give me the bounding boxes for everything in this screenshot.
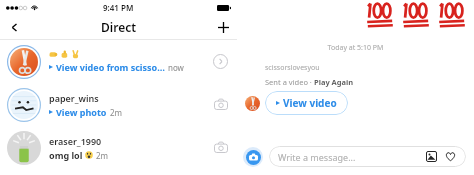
staticText: now	[168, 62, 184, 73]
button[interactable]: Send like	[444, 150, 457, 163]
staticText: Direct	[101, 19, 137, 35]
staticText: Play Again	[314, 77, 354, 87]
button[interactable]: Open conversation	[211, 52, 230, 71]
button[interactable]: Camera	[211, 95, 230, 114]
button[interactable]: View video	[265, 91, 348, 115]
staticText: eraser_1990	[49, 135, 102, 147]
button[interactable]: View video from scisso…	[0, 40, 237, 83]
staticText: paper_wins	[49, 92, 99, 104]
staticText: View photo	[56, 106, 107, 118]
staticText: 2m	[110, 107, 123, 118]
button[interactable]: Camera	[211, 138, 230, 157]
button[interactable]: New message	[213, 17, 233, 37]
staticText: Write a message...	[278, 151, 425, 163]
button[interactable]: eraser_1990	[0, 126, 237, 169]
staticText: omg lol	[49, 149, 83, 161]
staticText: Sent a video ·	[265, 77, 314, 87]
button[interactable]: Open camera	[243, 147, 263, 167]
staticText: View video from scisso…	[56, 61, 165, 73]
button[interactable]: Send photo	[425, 150, 438, 163]
button[interactable]: Back	[4, 17, 24, 37]
staticText: Today at 5:10 PM	[237, 43, 474, 53]
staticText: View video	[283, 96, 337, 110]
staticText: scissorslovesyou	[265, 63, 320, 73]
button[interactable]: paper_wins	[0, 83, 237, 126]
button[interactable]: Write a message...	[269, 146, 466, 167]
staticText: 9:41 PM	[103, 2, 134, 13]
staticText: 2m	[96, 150, 109, 161]
